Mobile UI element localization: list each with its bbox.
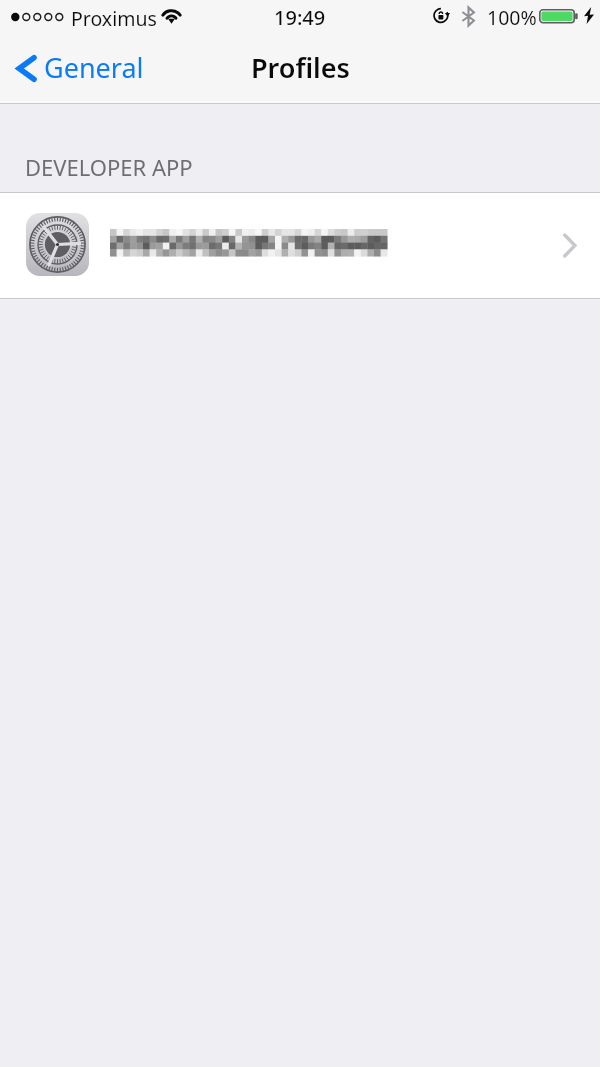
staticText: 100%: [487, 4, 537, 31]
staticText: 19:49: [274, 4, 326, 31]
staticText: Profiles: [251, 49, 350, 86]
staticText: DEVELOPER APP: [25, 152, 193, 182]
button[interactable]: Open profile details: [0, 193, 600, 298]
other: Open profile details: [562, 233, 577, 258]
button[interactable]: Back to General: [8, 47, 158, 92]
staticText: General: [44, 49, 144, 86]
staticText: Proximus: [71, 5, 157, 32]
